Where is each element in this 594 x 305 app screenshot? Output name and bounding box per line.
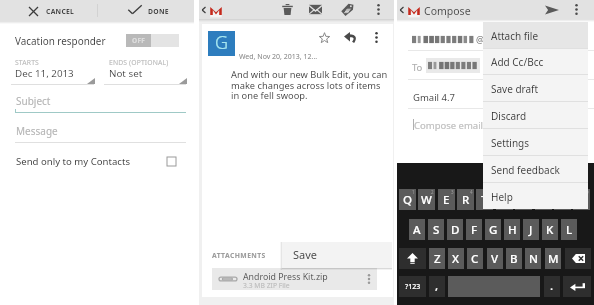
staticText: H <box>508 222 517 238</box>
staticText: N <box>529 251 538 267</box>
staticText: Subject <box>16 94 51 108</box>
button[interactable]: Vacation responder <box>8 31 186 50</box>
button[interactable]: W <box>418 189 435 210</box>
button[interactable]: Shift <box>399 248 426 269</box>
button[interactable]: Send only to my Contacts <box>8 152 186 171</box>
button[interactable]: Y <box>496 189 513 210</box>
button[interactable]: A <box>409 219 425 240</box>
button[interactable]: Navigate up <box>199 0 239 19</box>
button[interactable]: Help <box>483 182 588 209</box>
staticText: Message <box>16 124 58 138</box>
button[interactable]: Mark unread <box>307 0 324 19</box>
button[interactable]: I <box>535 189 552 210</box>
button[interactable]: Subject <box>8 92 186 114</box>
button[interactable]: V <box>487 248 503 269</box>
button[interactable]: O <box>554 189 571 210</box>
button[interactable]: Save draft <box>483 74 588 101</box>
button[interactable]: Send <box>542 0 562 19</box>
staticText: K <box>546 222 554 238</box>
button[interactable]: K <box>542 219 558 240</box>
staticText: To <box>412 61 423 74</box>
button[interactable]: R <box>457 189 474 210</box>
staticText: W <box>421 192 432 208</box>
button[interactable]: CANCEL <box>0 0 97 21</box>
staticText: Z <box>434 251 441 267</box>
button[interactable]: F <box>466 219 482 240</box>
button[interactable]: Send feedback <box>483 155 588 182</box>
button[interactable]: Settings <box>483 128 588 155</box>
button[interactable]: G <box>485 219 501 240</box>
button[interactable]: Message <box>8 122 186 144</box>
button[interactable]: OFF <box>126 34 179 47</box>
staticText: D <box>451 222 460 238</box>
button[interactable]: , <box>429 276 445 297</box>
button[interactable]: ?123 <box>399 276 426 297</box>
button[interactable]: Reply <box>342 29 359 46</box>
button[interactable]: More options <box>375 2 382 17</box>
button[interactable]: L <box>561 219 577 240</box>
staticText: C <box>471 251 479 267</box>
button[interactable]: Attach file <box>483 22 588 48</box>
button[interactable]: Z <box>429 248 445 269</box>
button[interactable]: Save <box>282 242 392 268</box>
button[interactable]: Navigate up <box>397 0 437 19</box>
button[interactable]: Star <box>316 29 332 46</box>
button[interactable]: Attachment options <box>361 268 377 290</box>
button[interactable]: M <box>545 248 561 269</box>
button[interactable]: Backspace <box>565 248 591 269</box>
staticText: DONE <box>148 7 169 16</box>
button[interactable]: Delete <box>279 0 296 19</box>
button[interactable]: B <box>506 248 522 269</box>
button[interactable]: . <box>544 276 560 297</box>
button[interactable]: U <box>515 189 532 210</box>
button[interactable]: Android Press Kit.zip <box>212 268 377 290</box>
button[interactable]: T <box>476 189 493 210</box>
staticText: V <box>491 251 499 267</box>
staticText: G <box>215 30 229 55</box>
staticText: Wed, Nov 20, 2013, 12... <box>239 52 318 62</box>
staticText: Android Press Kit.zip <box>243 271 328 283</box>
button[interactable]: More options <box>573 2 580 17</box>
staticText: ENDS (OPTIONAL) <box>109 58 169 67</box>
staticText: Save <box>293 247 318 262</box>
button[interactable]: H <box>504 219 520 240</box>
staticText: Send only to my Contacts <box>16 155 131 168</box>
button[interactable]: E <box>438 189 455 210</box>
button[interactable]: Q <box>399 189 416 210</box>
button[interactable]: S <box>428 219 444 240</box>
button[interactable]: J <box>523 219 539 240</box>
button[interactable]: More options <box>373 30 380 45</box>
button[interactable]: Enter <box>563 276 591 297</box>
staticText: Not set <box>109 67 143 80</box>
staticText: 1 <box>412 189 415 195</box>
staticText: Help <box>491 190 513 204</box>
staticText: 3 <box>451 189 454 195</box>
staticText: 3.3 MB ZIP File <box>243 281 290 290</box>
staticText: Vacation responder <box>15 34 106 47</box>
staticText: ATTACHMENTS <box>212 251 266 260</box>
button[interactable]: Add Cc/Bcc <box>483 48 588 74</box>
button[interactable]: D <box>447 219 463 240</box>
staticText: 4 <box>470 189 473 195</box>
button[interactable]: Change labels <box>339 0 356 19</box>
staticText: Q <box>403 192 413 208</box>
staticText: Save draft <box>491 82 539 96</box>
staticText: L <box>566 222 573 238</box>
button[interactable]: C <box>467 248 483 269</box>
button[interactable]: DONE <box>98 0 194 21</box>
staticText: Add Cc/Bcc <box>491 55 544 69</box>
staticText: 2 <box>431 189 434 195</box>
button[interactable]: P <box>573 189 590 210</box>
button[interactable]: STARTS <box>11 57 94 85</box>
button[interactable]: ENDS (OPTIONAL) <box>104 57 186 85</box>
button[interactable]: N <box>525 248 541 269</box>
button[interactable]: Discard <box>483 101 588 128</box>
button[interactable]: X <box>448 248 464 269</box>
staticText: Y <box>501 192 508 208</box>
staticText: F <box>471 222 478 238</box>
